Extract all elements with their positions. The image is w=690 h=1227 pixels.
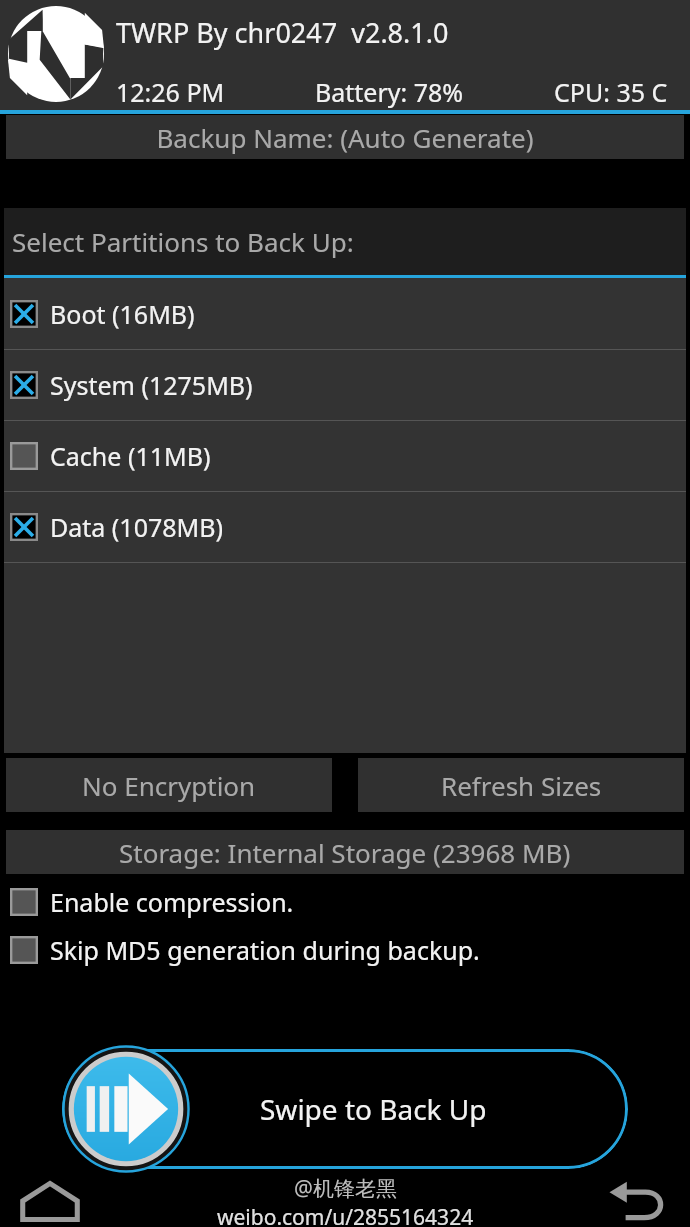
button[interactable]: Backup Name: (Auto Generate) bbox=[6, 115, 684, 159]
staticText: Storage: Internal Storage (23968 MB) bbox=[119, 835, 571, 870]
staticText: Data (1078MB) bbox=[50, 510, 223, 544]
button[interactable]: Home bbox=[8, 1174, 92, 1227]
staticText: System (1275MB) bbox=[50, 368, 253, 402]
staticText: Skip MD5 generation during backup. bbox=[50, 933, 480, 967]
staticText: Backup Name: (Auto Generate) bbox=[156, 120, 534, 155]
staticText: Select Partitions to Back Up: bbox=[12, 224, 354, 259]
staticText: @机锋老黑 bbox=[294, 1174, 397, 1203]
button[interactable]: Swipe to Back Up bbox=[65, 1048, 187, 1170]
button[interactable]: Cache (11MB) bbox=[4, 421, 686, 491]
button[interactable]: No Encryption bbox=[6, 758, 332, 812]
staticText: 12:26 PM bbox=[116, 75, 225, 109]
staticText: Refresh Sizes bbox=[441, 768, 602, 803]
button[interactable]: System (1275MB) bbox=[4, 350, 686, 420]
button[interactable]: Skip MD5 generation during backup. bbox=[0, 926, 690, 974]
staticText: Cache (11MB) bbox=[50, 439, 211, 473]
button[interactable]: Refresh Sizes bbox=[358, 758, 684, 812]
staticText: weibo.com/u/2855164324 bbox=[217, 1203, 474, 1227]
staticText: TWRP By chr0247 v2.8.1.0 bbox=[116, 14, 449, 51]
staticText: Boot (16MB) bbox=[50, 297, 195, 331]
button[interactable]: Storage: Internal Storage (23968 MB) bbox=[6, 830, 684, 874]
staticText: No Encryption bbox=[82, 768, 256, 803]
staticText: Enable compression. bbox=[50, 885, 294, 919]
button[interactable]: Boot (16MB) bbox=[4, 278, 686, 349]
button[interactable]: Enable compression. bbox=[0, 878, 690, 926]
staticText: CPU: 35 C bbox=[554, 75, 668, 109]
staticText: Swipe to Back Up bbox=[260, 1090, 487, 1128]
button[interactable]: Swipe to Back Up bbox=[62, 1049, 628, 1169]
staticText: Battery: 78% bbox=[315, 75, 464, 109]
button[interactable]: Data (1078MB) bbox=[4, 492, 686, 562]
button[interactable]: Back bbox=[596, 1174, 680, 1227]
